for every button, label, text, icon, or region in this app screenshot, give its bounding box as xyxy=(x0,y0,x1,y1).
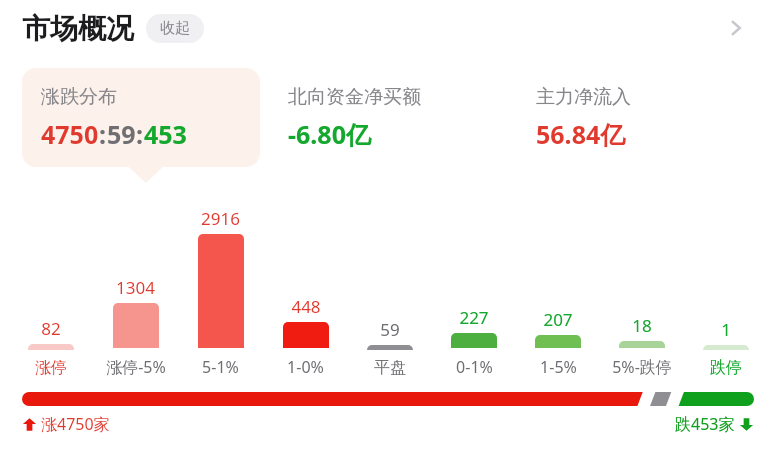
button[interactable]: 1 xyxy=(684,318,768,378)
button[interactable]: 涨跌分布 xyxy=(22,68,260,167)
staticText: 市场概况 xyxy=(22,11,134,46)
staticText: 5-1% xyxy=(202,356,239,378)
staticText: -6.80亿 xyxy=(288,117,371,151)
button[interactable]: 1304 xyxy=(93,276,178,378)
staticText: 涨4750家 xyxy=(41,413,110,435)
staticText: 56.84亿 xyxy=(536,117,626,151)
button[interactable]: 18 xyxy=(600,314,684,378)
staticText: : xyxy=(99,117,107,151)
staticText: 1-0% xyxy=(287,356,324,378)
staticText: 82 xyxy=(41,317,61,340)
button[interactable]: 448 xyxy=(263,295,348,378)
staticText: 跌停 xyxy=(710,358,742,378)
staticText: 0-1% xyxy=(456,356,493,378)
staticText: 涨跌分布 xyxy=(41,85,117,109)
staticText: 448 xyxy=(291,295,321,318)
staticText: 涨停 xyxy=(35,358,67,378)
staticText: 453 xyxy=(144,117,187,151)
staticText: 1-5% xyxy=(540,356,577,378)
staticText: 59 xyxy=(107,117,136,151)
staticText: 4750 xyxy=(41,117,99,151)
button[interactable]: 主力净流入 xyxy=(517,68,756,167)
staticText: 2916 xyxy=(201,207,240,230)
staticText: 平盘 xyxy=(374,358,406,378)
button[interactable]: 227 xyxy=(432,306,516,378)
staticText: 5%-跌停 xyxy=(612,356,672,378)
staticText: 涨停-5% xyxy=(106,356,166,378)
staticText: 207 xyxy=(543,308,573,331)
button[interactable]: 207 xyxy=(516,308,600,378)
button[interactable]: 59 xyxy=(348,318,432,378)
staticText: 北向资金净买额 xyxy=(288,85,421,109)
button[interactable]: 跌453家 xyxy=(675,413,754,435)
staticText: 收起 xyxy=(160,19,190,38)
button[interactable]: 82 xyxy=(8,317,93,378)
staticText: 18 xyxy=(632,314,652,337)
button[interactable]: 涨4750家 xyxy=(22,413,110,435)
staticText: 1 xyxy=(721,318,731,341)
button[interactable]: More details xyxy=(714,6,758,50)
staticText: 跌453家 xyxy=(675,413,735,435)
staticText: 227 xyxy=(459,306,489,329)
staticText: 59 xyxy=(380,318,400,341)
staticText: : xyxy=(136,117,144,151)
button[interactable]: 北向资金净买额 xyxy=(269,68,508,167)
button[interactable]: 2916 xyxy=(178,207,263,378)
button[interactable]: 收起 xyxy=(146,14,204,43)
staticText: 主力净流入 xyxy=(536,85,631,109)
staticText: 1304 xyxy=(116,276,155,299)
